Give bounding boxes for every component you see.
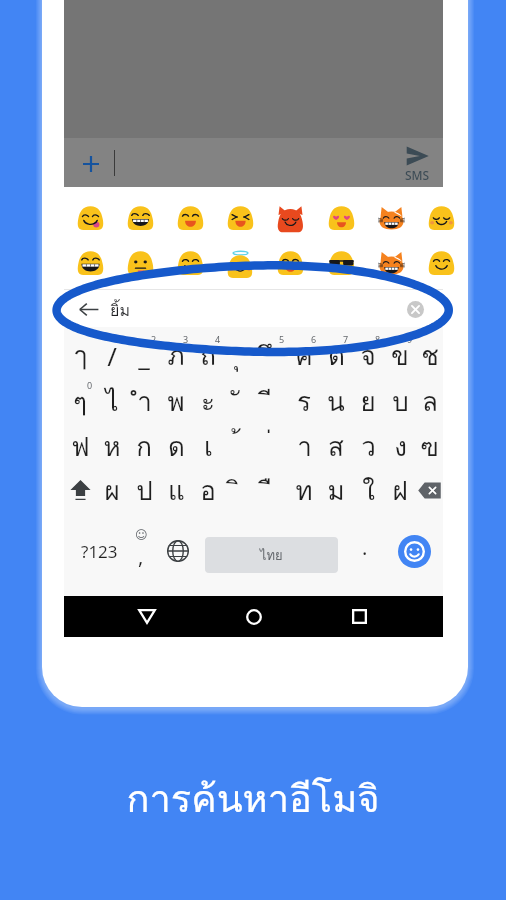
button[interactable]: พ (160, 379, 192, 423)
staticText: ข (391, 335, 409, 376)
button[interactable]: ี (256, 379, 288, 423)
button[interactable]: ำ (128, 379, 160, 423)
button[interactable]: 0 (64, 379, 96, 423)
staticText: 5 (279, 333, 285, 345)
button[interactable]: 8 (352, 333, 384, 377)
button[interactable]: ร (288, 379, 320, 423)
button[interactable]: ง (384, 424, 416, 468)
button[interactable]: 1 (96, 333, 128, 377)
button[interactable]: แ (160, 468, 192, 512)
button[interactable]: บ (384, 379, 416, 423)
button[interactable]: ท (288, 468, 320, 512)
button[interactable]: Home (233, 596, 274, 637)
staticText: ะ (201, 381, 215, 422)
button[interactable]: 7 (320, 333, 352, 377)
button[interactable]: Emoji 0 (77, 206, 104, 230)
button[interactable]: ?123 (72, 531, 126, 571)
button[interactable]: Emoji 2 (177, 206, 204, 230)
button[interactable]: ุ (224, 333, 256, 377)
staticText: ง (394, 426, 407, 467)
button[interactable]: Send SMS (394, 146, 440, 182)
button[interactable]: Emoji 6 (378, 206, 405, 230)
button[interactable]: Add attachment (83, 156, 99, 172)
button[interactable]: Emoji 14 (378, 251, 405, 275)
staticText: ไทย (260, 545, 283, 566)
staticText: _ (138, 338, 150, 373)
button[interactable]: ่ (256, 424, 288, 468)
button[interactable]: Emoji 5 (328, 206, 355, 230)
button[interactable]: ๅ (64, 333, 96, 377)
staticText: ล (422, 381, 438, 422)
button[interactable]: Emoji 4 (277, 206, 304, 230)
staticText: 6 (311, 333, 317, 345)
button[interactable]: 5 (256, 333, 288, 377)
button[interactable]: Emoji 9 (127, 251, 154, 275)
button[interactable]: ล (416, 379, 443, 423)
staticText: ม (327, 470, 345, 511)
button[interactable]: ฃ (416, 424, 443, 468)
button[interactable]: อ (192, 468, 224, 512)
button[interactable]: ใ (352, 468, 384, 512)
staticText: ส (328, 426, 344, 467)
staticText: 7 (343, 333, 349, 345)
button[interactable]: ด (160, 424, 192, 468)
staticText: ฝ (392, 470, 408, 511)
button[interactable]: . (345, 531, 385, 571)
button[interactable]: ก (128, 424, 160, 468)
staticText: ก (136, 426, 152, 467)
button[interactable]: เ (192, 424, 224, 468)
button[interactable]: ☺ (121, 531, 161, 571)
button[interactable]: ช (416, 333, 443, 377)
staticText: 1 (119, 333, 125, 345)
button[interactable]: ้ (224, 424, 256, 468)
button[interactable]: Emoji 13 (328, 251, 355, 275)
button[interactable]: ไ (96, 379, 128, 423)
staticText: ำ (137, 381, 152, 422)
staticText: 2 (151, 333, 157, 345)
button[interactable]: Emoji 15 (428, 251, 455, 275)
button[interactable]: ย (352, 379, 384, 423)
button[interactable]: Clear search (407, 301, 424, 318)
button[interactable]: ฟ (64, 424, 96, 468)
staticText: , (138, 543, 144, 570)
button[interactable]: Emoji 7 (428, 206, 455, 230)
button[interactable]: Emoji 12 (277, 251, 304, 275)
button[interactable]: Change keyboard language (158, 531, 198, 571)
staticText: ๆ (73, 381, 87, 422)
button[interactable]: 6 (288, 333, 320, 377)
button[interactable]: Back (126, 596, 167, 637)
staticText: ร (297, 381, 311, 422)
button[interactable]: ห (96, 424, 128, 468)
button[interactable]: 3 (160, 333, 192, 377)
button[interactable]: Back (76, 296, 102, 322)
button[interactable]: 4 (192, 333, 224, 377)
staticText: 4 (215, 333, 221, 345)
button[interactable]: Backspace (416, 468, 443, 512)
staticText: ย (360, 381, 376, 422)
button[interactable]: Emoji 1 (127, 206, 154, 230)
button[interactable]: า (288, 424, 320, 468)
button[interactable]: Emoji 10 (177, 251, 204, 275)
button[interactable]: 2 (128, 333, 160, 377)
button[interactable]: 9 (384, 333, 416, 377)
button[interactable]: ผ (96, 468, 128, 512)
button[interactable]: ว (352, 424, 384, 468)
staticText: 3 (183, 333, 189, 345)
button[interactable]: น (320, 379, 352, 423)
button[interactable]: ฝ (384, 468, 416, 512)
button[interactable]: ื (256, 468, 288, 512)
button[interactable]: ั (224, 379, 256, 423)
button[interactable]: ิ (224, 468, 256, 512)
button[interactable]: Emoji 8 (77, 251, 104, 275)
staticText: ผ (104, 470, 120, 511)
button[interactable]: ป (128, 468, 160, 512)
button[interactable]: ม (320, 468, 352, 512)
button[interactable]: Recent apps (339, 596, 380, 637)
button[interactable]: ส (320, 424, 352, 468)
button[interactable]: Emoji 3 (227, 206, 254, 230)
button[interactable]: Open emoji keyboard (398, 535, 431, 568)
button[interactable]: Shift (64, 468, 96, 512)
button[interactable]: ะ (192, 379, 224, 423)
button[interactable]: ไทย (205, 537, 338, 573)
button[interactable]: Emoji 11 (227, 251, 254, 275)
